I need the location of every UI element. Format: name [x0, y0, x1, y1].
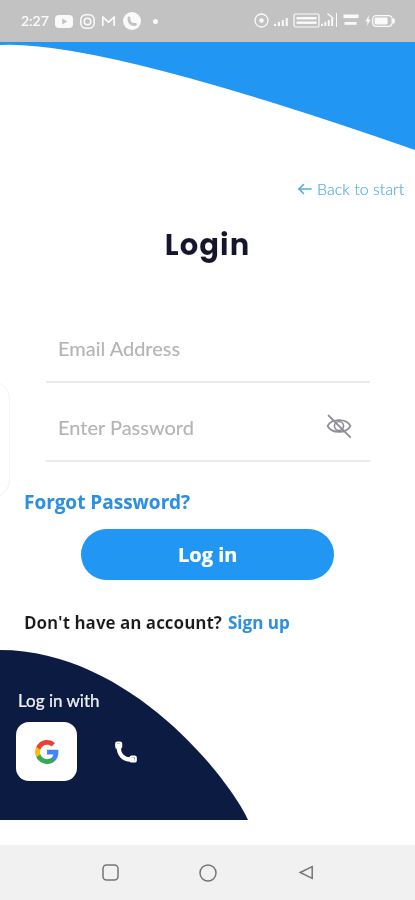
- button[interactable]: Recents: [61, 845, 159, 900]
- staticText: Sign up: [228, 611, 290, 634]
- staticText: Don't have an account?: [24, 611, 222, 634]
- button[interactable]: Forgot Password?: [20, 485, 194, 519]
- button[interactable]: Log in: [81, 529, 334, 580]
- button[interactable]: Enter Password: [46, 409, 370, 461]
- button[interactable]: Back: [257, 845, 355, 900]
- staticText: Login: [0, 225, 415, 266]
- button[interactable]: Home: [159, 845, 257, 900]
- staticText: Back to start: [317, 179, 405, 198]
- button[interactable]: Sign up: [228, 611, 290, 634]
- staticText: 2:27: [21, 12, 49, 29]
- button[interactable]: Show password: [326, 413, 352, 439]
- button[interactable]: Sign in with Google: [16, 722, 77, 781]
- button[interactable]: Sign in with phone: [110, 736, 142, 768]
- button[interactable]: Email Address: [46, 330, 370, 382]
- staticText: Forgot Password?: [24, 489, 190, 515]
- staticText: Email Address: [58, 336, 181, 360]
- staticText: Log in with: [18, 690, 100, 710]
- staticText: Log in: [178, 541, 238, 568]
- button[interactable]: Back to start: [294, 177, 409, 200]
- staticText: Enter Password: [58, 415, 194, 439]
